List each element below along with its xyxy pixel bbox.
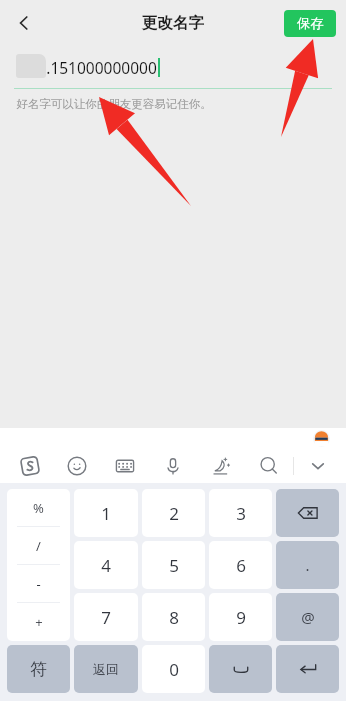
staticText: @ [301, 607, 315, 627]
button[interactable]: 0 [142, 645, 205, 693]
staticText: 8 [169, 606, 179, 629]
button[interactable]: - [7, 565, 70, 603]
button[interactable]: 1 [74, 489, 138, 537]
staticText: 9 [236, 606, 246, 629]
button[interactable]: Handwriting [197, 449, 245, 483]
button[interactable]: 返回 [74, 645, 138, 693]
staticText: 5 [169, 554, 179, 577]
button[interactable]: Enter [276, 645, 339, 693]
button[interactable]: 保存 [284, 10, 336, 37]
button[interactable]: Emoji [53, 449, 101, 483]
button[interactable]: 2 [142, 489, 205, 537]
button[interactable]: 7 [74, 593, 138, 641]
staticText: 返回 [93, 661, 119, 677]
button[interactable]: .151000000000 [16, 46, 330, 88]
button[interactable]: % [7, 489, 70, 527]
staticText: 3 [236, 502, 246, 525]
staticText: 好名字可以让你的朋友更容易记住你。 [16, 97, 212, 111]
button[interactable]: 4 [74, 541, 138, 589]
staticText: 0 [169, 658, 179, 681]
staticText: 更改名字 [142, 13, 204, 33]
staticText: .151000000000 [46, 57, 157, 78]
staticText: 4 [101, 554, 111, 577]
button[interactable]: 9 [209, 593, 272, 641]
staticText: 保存 [297, 15, 324, 32]
button[interactable]: Space [209, 645, 272, 693]
staticText: 7 [101, 606, 111, 629]
staticText: 1 [101, 502, 111, 525]
button[interactable]: / [7, 527, 70, 565]
button[interactable]: + [7, 603, 70, 641]
staticText: 6 [236, 554, 246, 577]
button[interactable]: 6 [209, 541, 272, 589]
button[interactable]: Keyboard layout [101, 449, 149, 483]
button[interactable]: Back [4, 3, 44, 43]
staticText: - [36, 575, 41, 593]
button[interactable]: . [276, 541, 339, 589]
button[interactable]: Backspace [276, 489, 339, 537]
button[interactable]: 3 [209, 489, 272, 537]
button[interactable]: 5 [142, 541, 205, 589]
button[interactable]: 符 [7, 645, 70, 693]
staticText: . [305, 555, 310, 575]
button[interactable]: Voice input [149, 449, 197, 483]
staticText: % [33, 499, 44, 517]
button[interactable]: Sogou assistant [313, 430, 330, 447]
staticText: 2 [169, 502, 179, 525]
button[interactable]: @ [276, 593, 339, 641]
button[interactable]: 8 [142, 593, 205, 641]
button[interactable]: Sogou input [6, 449, 53, 483]
button[interactable]: Hide keyboard [294, 449, 342, 483]
staticText: / [36, 537, 41, 555]
staticText: 符 [30, 659, 47, 680]
staticText: + [35, 613, 43, 631]
button[interactable]: Search [245, 449, 293, 483]
